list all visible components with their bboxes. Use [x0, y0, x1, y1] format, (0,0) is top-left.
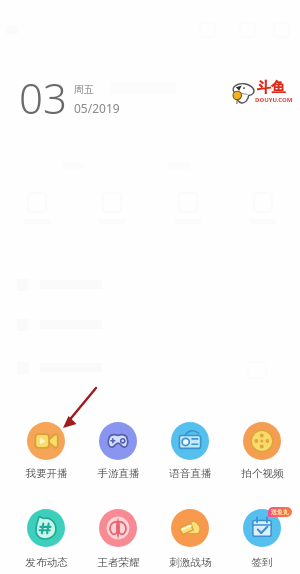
staticText: 手游直播: [97, 467, 140, 480]
staticText: 送鱼丸: [271, 508, 289, 516]
staticText: 语音直播: [169, 467, 212, 480]
staticText: 王者荣耀: [97, 556, 140, 569]
staticText: 签到: [251, 556, 273, 569]
button[interactable]: 刺激战场: [157, 509, 223, 569]
staticText: 周五: [74, 83, 94, 96]
staticText: 03: [19, 69, 67, 126]
button[interactable]: 发布动态: [13, 509, 79, 569]
staticText: 05/2019: [74, 100, 120, 116]
staticText: DOUYU.COM: [255, 96, 293, 104]
button[interactable]: DouYu logo: [232, 79, 287, 108]
button[interactable]: 签到: [229, 509, 295, 569]
button[interactable]: 语音直播: [157, 422, 223, 480]
staticText: 拍个视频: [241, 467, 284, 480]
button[interactable]: 我要开播: [13, 422, 79, 480]
button[interactable]: 王者荣耀: [85, 509, 151, 569]
staticText: 发布动态: [25, 556, 68, 569]
staticText: 刺激战场: [169, 556, 212, 569]
button[interactable]: 手游直播: [85, 422, 151, 480]
staticText: 斗鱼: [257, 79, 285, 97]
staticText: 我要开播: [25, 467, 68, 480]
button[interactable]: 拍个视频: [229, 422, 295, 480]
